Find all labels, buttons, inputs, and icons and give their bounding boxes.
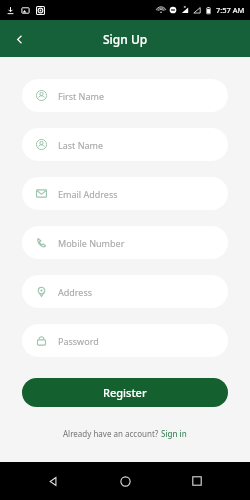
staticText: Register bbox=[103, 385, 147, 400]
staticText: Last Name bbox=[58, 139, 104, 151]
button[interactable]: Back bbox=[40, 468, 66, 494]
button[interactable]: Sign in bbox=[161, 428, 187, 439]
button[interactable]: Last Name bbox=[22, 128, 228, 161]
staticText: Sign in bbox=[161, 428, 187, 439]
button[interactable]: Back bbox=[6, 26, 32, 52]
button[interactable]: Address bbox=[22, 275, 228, 308]
button[interactable]: First Name bbox=[22, 79, 228, 112]
button[interactable]: Email Address bbox=[22, 177, 228, 210]
staticText: Mobile Number bbox=[58, 237, 125, 249]
staticText: 7:57 AM bbox=[216, 5, 245, 15]
button[interactable]: Mobile Number bbox=[22, 226, 228, 259]
staticText: Email Address bbox=[58, 188, 118, 200]
staticText: Address bbox=[58, 286, 93, 298]
staticText: Password bbox=[58, 335, 99, 347]
button[interactable]: Recent apps bbox=[184, 468, 210, 494]
staticText: Already have an account? bbox=[63, 428, 161, 439]
button[interactable]: Password bbox=[22, 324, 228, 357]
button[interactable]: Register bbox=[22, 378, 228, 407]
staticText: First Name bbox=[58, 90, 104, 102]
button[interactable]: Home bbox=[112, 468, 138, 494]
staticText: Sign Up bbox=[103, 31, 148, 47]
